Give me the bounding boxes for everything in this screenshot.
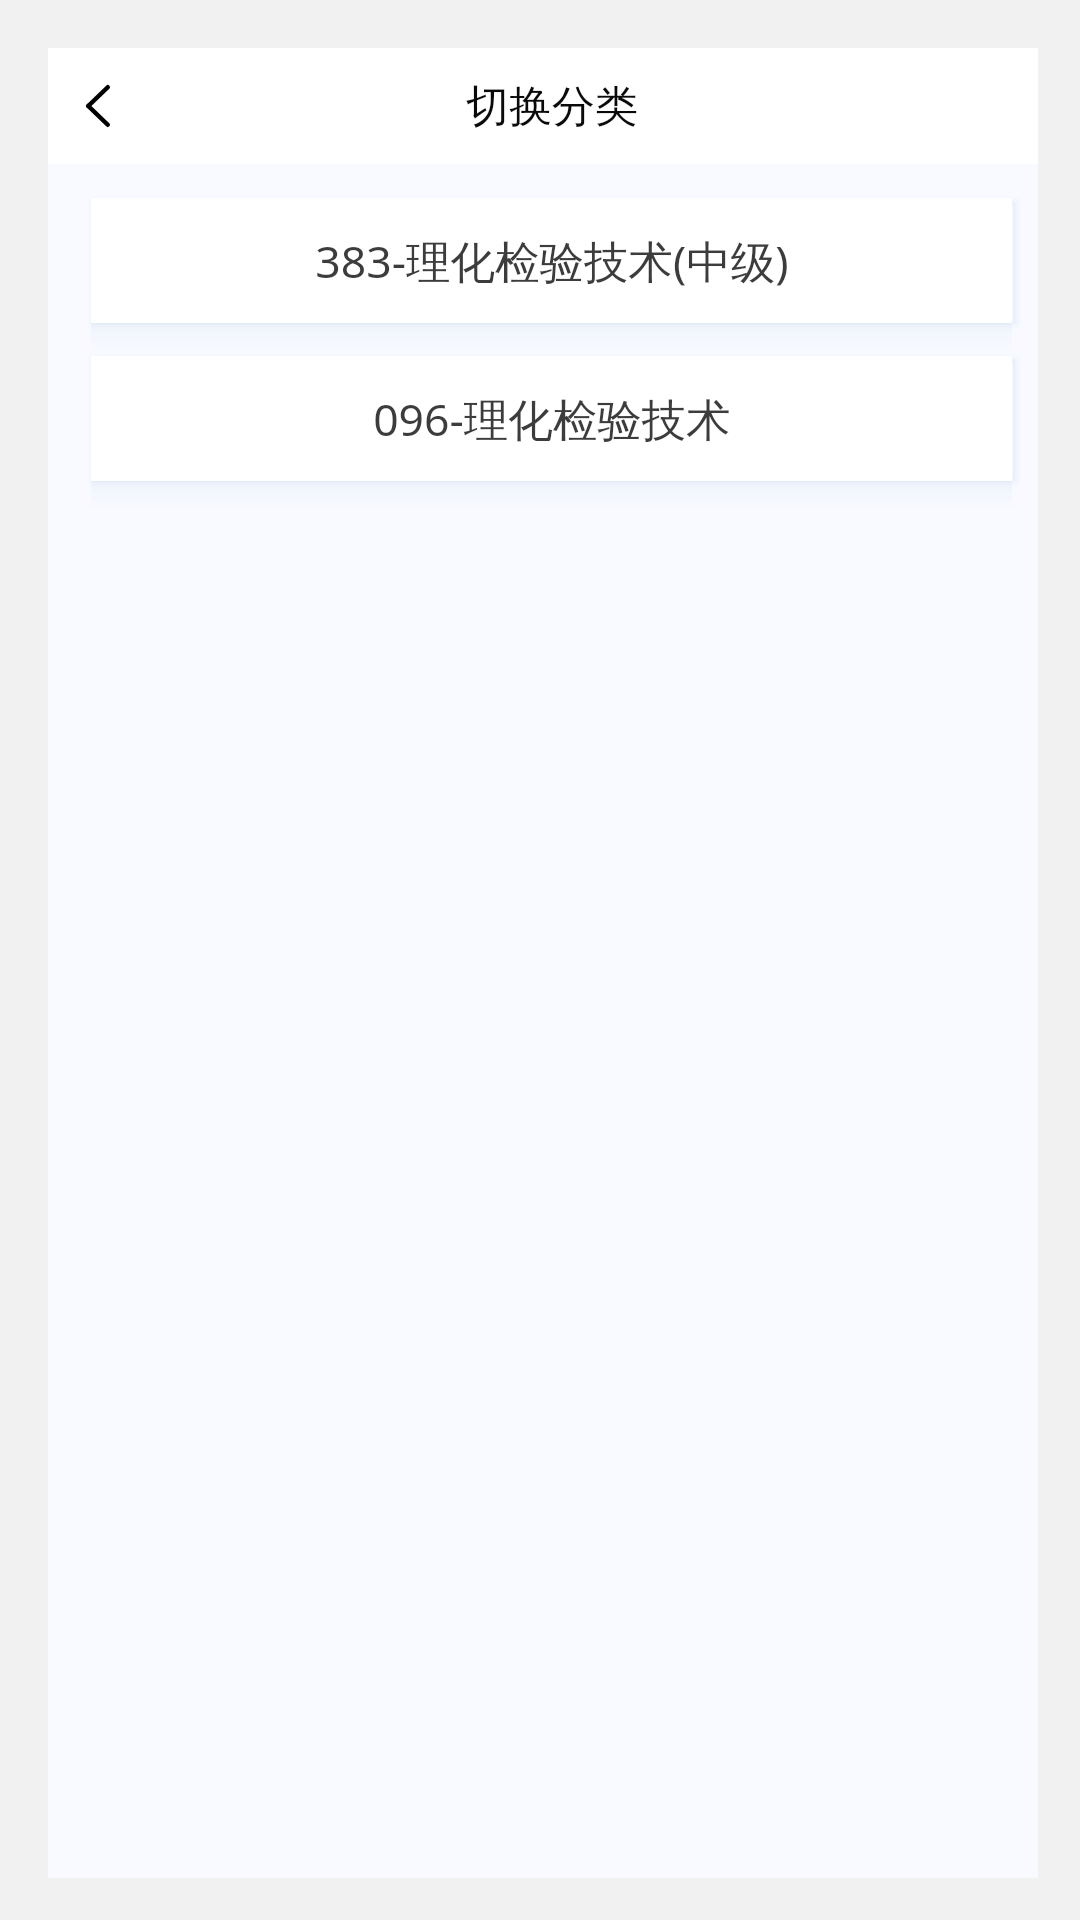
button[interactable]: 383-理化检验技术(中级) (91, 198, 1012, 323)
button[interactable]: Back (49, 57, 147, 155)
staticText: 383-理化检验技术(中级) (315, 230, 789, 291)
button[interactable]: 096-理化检验技术 (91, 356, 1012, 481)
staticText: 切换分类 (466, 80, 638, 134)
staticText: 096-理化检验技术 (373, 388, 731, 449)
